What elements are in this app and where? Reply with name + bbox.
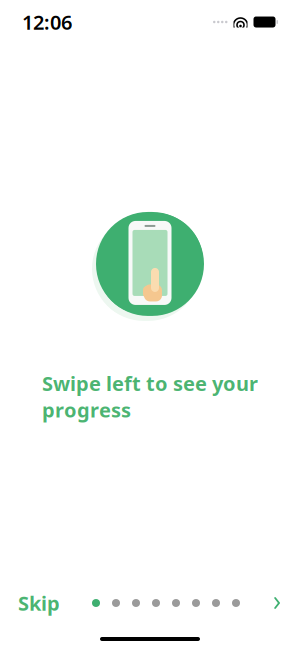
button[interactable]: Skip [8,582,70,624]
button[interactable]: Next [262,587,292,619]
staticText: 12:06 [22,9,72,35]
staticText: Swipe left to see your progress [42,370,258,423]
staticText: Skip [18,590,60,616]
